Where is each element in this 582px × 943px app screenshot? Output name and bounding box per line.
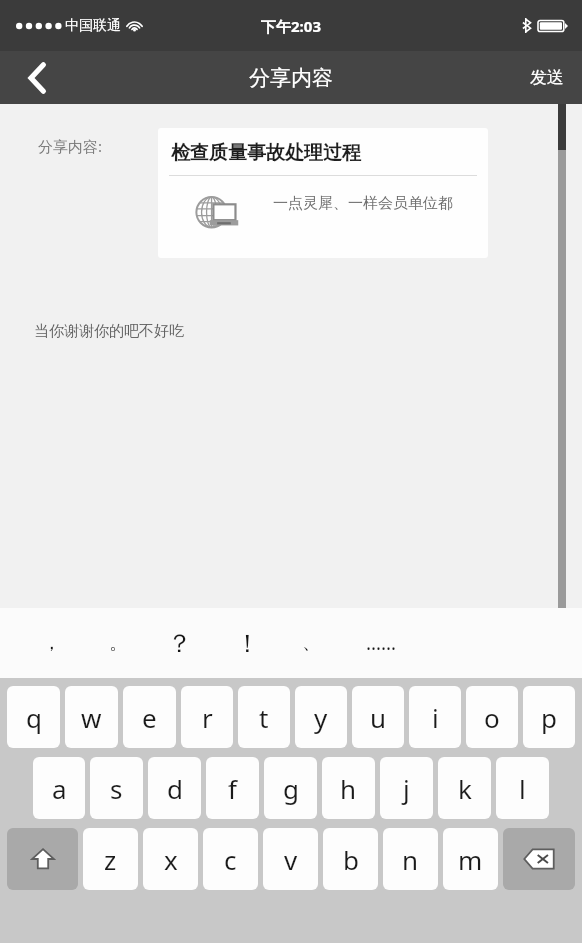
button[interactable]: p	[523, 686, 575, 748]
button[interactable]: d	[148, 757, 201, 819]
button[interactable]: h	[322, 757, 375, 819]
button[interactable]: m	[443, 828, 498, 890]
button[interactable]: 、	[288, 618, 334, 668]
button[interactable]: y	[295, 686, 347, 748]
button[interactable]: e	[123, 686, 176, 748]
staticText: j	[403, 771, 410, 806]
button[interactable]: k	[438, 757, 491, 819]
staticText: 中国联通	[65, 17, 121, 35]
staticText: 。	[109, 631, 128, 655]
button[interactable]: c	[203, 828, 258, 890]
staticText: 分享内容	[249, 65, 333, 91]
button[interactable]: z	[83, 828, 138, 890]
staticText: e	[142, 700, 157, 735]
staticText: u	[370, 700, 387, 735]
button[interactable]: l	[496, 757, 549, 819]
staticText: r	[202, 700, 213, 735]
button[interactable]: i	[409, 686, 461, 748]
staticText: ，	[42, 631, 61, 655]
button[interactable]: 返回	[0, 51, 74, 104]
staticText: z	[104, 842, 117, 877]
staticText: ！	[235, 628, 260, 659]
staticText: i	[432, 700, 439, 735]
button[interactable]: u	[352, 686, 404, 748]
button[interactable]: g	[264, 757, 317, 819]
staticText: b	[343, 842, 359, 877]
staticText: ？	[167, 628, 192, 659]
button[interactable]: ？	[156, 618, 202, 668]
staticText: f	[228, 771, 237, 806]
staticText: v	[284, 842, 298, 877]
staticText: 分享内容:	[38, 136, 103, 156]
button[interactable]: v	[263, 828, 318, 890]
staticText: k	[458, 771, 472, 806]
staticText: s	[110, 771, 123, 806]
button[interactable]: t	[238, 686, 290, 748]
button[interactable]: 。	[95, 618, 141, 668]
button[interactable]: ，	[28, 618, 74, 668]
button[interactable]: x	[143, 828, 198, 890]
staticText: ……	[366, 630, 397, 656]
staticText: 下午2:03	[261, 16, 321, 36]
button[interactable]: b	[323, 828, 378, 890]
staticText: w	[81, 700, 102, 735]
staticText: t	[259, 700, 269, 735]
staticText: 、	[302, 631, 321, 655]
button[interactable]: a	[33, 757, 85, 819]
button[interactable]: n	[383, 828, 438, 890]
button[interactable]: o	[466, 686, 518, 748]
button[interactable]: Shift	[7, 828, 78, 890]
staticText: 发送	[530, 67, 564, 88]
button[interactable]: f	[206, 757, 259, 819]
staticText: m	[458, 842, 483, 877]
staticText: c	[224, 842, 237, 877]
staticText: d	[167, 771, 183, 806]
staticText: 一点灵犀、一样会员单位都	[273, 194, 478, 213]
staticText: g	[283, 771, 299, 806]
button[interactable]: ！	[224, 618, 270, 668]
button[interactable]: 发送	[512, 51, 582, 104]
staticText: a	[52, 771, 67, 806]
button[interactable]: j	[380, 757, 433, 819]
staticText: p	[541, 700, 557, 735]
staticText: y	[314, 700, 328, 735]
staticText: h	[340, 771, 357, 806]
staticText: o	[484, 700, 500, 735]
button[interactable]: q	[7, 686, 60, 748]
button[interactable]: w	[65, 686, 118, 748]
staticText: x	[164, 842, 178, 877]
staticText: 检查质量事故处理过程	[171, 141, 361, 165]
staticText: l	[519, 771, 526, 806]
button[interactable]: s	[90, 757, 143, 819]
button[interactable]: ……	[358, 618, 404, 668]
staticText: 当你谢谢你的吧不好吃	[34, 322, 184, 341]
staticText: q	[26, 700, 42, 735]
button[interactable]: Backspace	[503, 828, 575, 890]
button[interactable]: 检查质量事故处理过程	[158, 128, 488, 258]
button[interactable]: r	[181, 686, 233, 748]
staticText: n	[402, 842, 419, 877]
